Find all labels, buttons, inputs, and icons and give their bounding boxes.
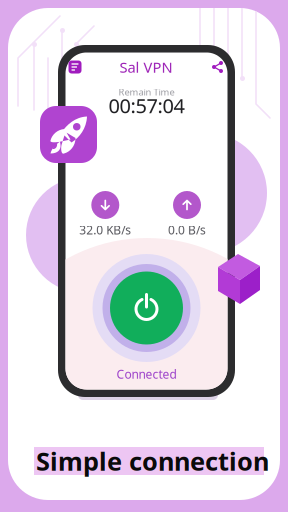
staticText: Sal VPN [119, 57, 172, 77]
staticText: Simple connection [36, 444, 269, 478]
staticText: Connected [116, 366, 176, 382]
button[interactable]: Power [92, 254, 200, 362]
button[interactable]: Menu [68, 60, 81, 73]
staticText: 00:57:04 [108, 92, 184, 119]
staticText: Remain Time [118, 86, 174, 98]
staticText: 0.0 B/s [168, 222, 206, 238]
staticText: 32.0 KB/s [79, 222, 131, 238]
button[interactable]: Share [210, 60, 224, 73]
